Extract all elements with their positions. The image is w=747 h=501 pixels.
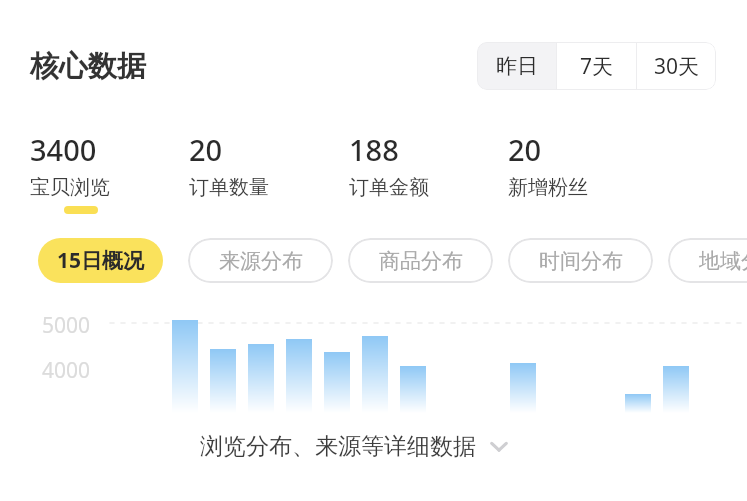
staticText: 地域分布 <box>699 248 747 274</box>
staticText: 20 <box>508 130 542 169</box>
staticText: 188 <box>349 130 399 169</box>
staticText: 时间分布 <box>539 248 623 274</box>
staticText: 宝贝浏览 <box>30 175 110 200</box>
staticText: 5000 <box>42 311 91 340</box>
button[interactable]: 来源分布 <box>188 238 333 283</box>
button[interactable]: 20 <box>189 130 339 200</box>
button[interactable]: 时间分布 <box>508 238 653 283</box>
button[interactable]: 15日概况 <box>38 238 163 283</box>
staticText: 核心数据 <box>30 48 146 85</box>
other: Expand details <box>486 433 512 459</box>
staticText: 浏览分布、来源等详细数据 <box>200 432 476 461</box>
staticText: 昨日 <box>496 53 538 79</box>
button[interactable]: 30天 <box>637 42 716 90</box>
staticText: 来源分布 <box>219 248 303 274</box>
staticText: 订单数量 <box>189 175 269 200</box>
button[interactable]: 3400 <box>30 130 180 214</box>
staticText: 4000 <box>42 356 91 385</box>
staticText: 3400 <box>30 130 97 169</box>
button[interactable]: 20 <box>508 130 658 200</box>
button[interactable]: 浏览分布、来源等详细数据 <box>200 425 512 467</box>
button[interactable]: 商品分布 <box>348 238 493 283</box>
button[interactable]: 核心数据 <box>30 48 146 85</box>
staticText: 20 <box>189 130 223 169</box>
button[interactable]: 7天 <box>557 42 636 90</box>
button[interactable]: 地域分布 <box>668 238 747 283</box>
staticText: 7天 <box>580 52 614 81</box>
staticText: 15日概况 <box>57 246 145 275</box>
button[interactable]: 188 <box>349 130 499 200</box>
staticText: 订单金额 <box>349 175 429 200</box>
staticText: 新增粉丝 <box>508 175 588 200</box>
staticText: 30天 <box>654 52 700 81</box>
staticText: 商品分布 <box>379 248 463 274</box>
button[interactable]: 昨日 <box>477 42 556 90</box>
